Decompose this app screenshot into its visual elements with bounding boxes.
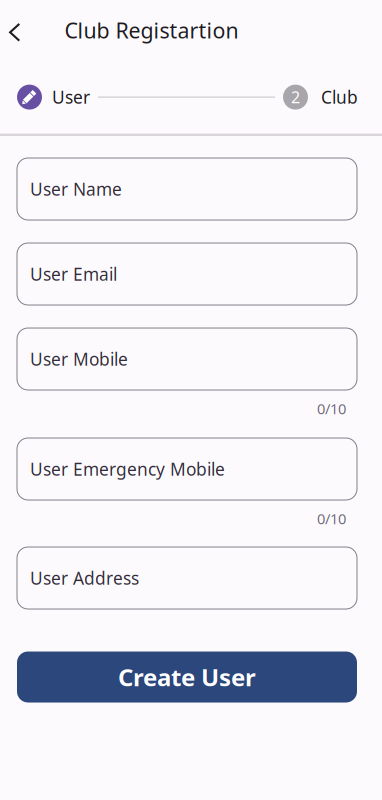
button[interactable]: Create User: [17, 651, 357, 702]
staticText: User Name: [30, 177, 122, 200]
button[interactable]: User Mobile: [17, 328, 357, 390]
button[interactable]: User Emergency Mobile: [17, 438, 357, 500]
staticText: Create User: [118, 661, 256, 693]
button[interactable]: User Name: [17, 158, 357, 220]
staticText: 2: [291, 86, 300, 108]
staticText: User Mobile: [30, 347, 128, 370]
staticText: Club Registartion: [64, 16, 238, 44]
staticText: User Address: [30, 566, 139, 589]
staticText: 0/10: [317, 399, 346, 418]
button[interactable]: User Address: [17, 547, 357, 609]
button[interactable]: User Email: [17, 243, 357, 305]
staticText: 0/10: [317, 509, 346, 528]
staticText: User Emergency Mobile: [30, 457, 225, 480]
button[interactable]: Back: [0, 10, 33, 51]
staticText: User Email: [30, 262, 117, 285]
staticText: Club: [321, 86, 358, 109]
staticText: User: [52, 86, 90, 109]
